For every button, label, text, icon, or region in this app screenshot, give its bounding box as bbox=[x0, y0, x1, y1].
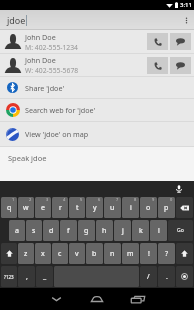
button[interactable]: t bbox=[69, 197, 85, 218]
staticText: . bbox=[166, 272, 168, 282]
staticText: p bbox=[164, 203, 169, 213]
staticText: Go bbox=[177, 227, 184, 234]
button[interactable]: Slash bbox=[140, 266, 157, 287]
button[interactable]: Recents bbox=[128, 288, 148, 310]
button[interactable]: View 'jdoe' on map bbox=[0, 122, 194, 146]
button[interactable]: v bbox=[69, 243, 85, 264]
button[interactable]: z bbox=[18, 243, 34, 264]
staticText: q bbox=[7, 203, 12, 213]
button[interactable]: p bbox=[158, 197, 175, 218]
staticText: v bbox=[75, 249, 79, 259]
staticText: M: 402-555-1234 bbox=[25, 43, 79, 52]
button[interactable]: Back bbox=[46, 288, 66, 310]
button[interactable]: j bbox=[114, 220, 131, 241]
button[interactable]: u bbox=[104, 197, 121, 218]
button[interactable]: John Doe bbox=[0, 30, 194, 53]
button[interactable]: x bbox=[35, 243, 51, 264]
button[interactable]: Emoji bbox=[176, 266, 193, 287]
staticText: r bbox=[59, 203, 62, 213]
staticText: u bbox=[110, 203, 115, 213]
button[interactable]: More options bbox=[178, 10, 194, 30]
button[interactable]: ! bbox=[140, 243, 157, 264]
staticText: _ bbox=[43, 272, 47, 282]
button[interactable]: k bbox=[132, 220, 149, 241]
button[interactable]: w bbox=[18, 197, 34, 218]
button[interactable]: Backspace bbox=[176, 197, 193, 218]
button[interactable]: a bbox=[9, 220, 25, 241]
staticText: c bbox=[58, 249, 62, 259]
staticText: Speak jdoe bbox=[8, 153, 47, 163]
button[interactable]: h bbox=[96, 220, 113, 241]
button[interactable]: Period bbox=[158, 266, 175, 287]
button[interactable]: Voice input bbox=[174, 184, 183, 193]
staticText: 3 bbox=[46, 197, 49, 202]
button[interactable]: d bbox=[43, 220, 59, 241]
staticText: View 'jdoe' on map bbox=[25, 129, 89, 139]
button[interactable]: s bbox=[26, 220, 42, 241]
staticText: John Doe bbox=[25, 32, 56, 42]
button[interactable]: Call bbox=[147, 33, 168, 50]
button[interactable]: o bbox=[140, 197, 157, 218]
staticText: ?123 bbox=[4, 274, 14, 280]
staticText: l bbox=[158, 226, 160, 236]
staticText: 1 bbox=[12, 197, 15, 202]
button[interactable]: Shift bbox=[176, 243, 193, 264]
staticText: j bbox=[122, 226, 124, 236]
staticText: , bbox=[26, 272, 28, 282]
staticText: f bbox=[67, 226, 70, 236]
button[interactable]: ? bbox=[158, 243, 175, 264]
button[interactable]: Comma bbox=[18, 266, 35, 287]
staticText: x bbox=[41, 249, 45, 259]
staticText: a bbox=[15, 226, 19, 236]
button[interactable]: y bbox=[86, 197, 103, 218]
staticText: 8 bbox=[134, 197, 137, 202]
staticText: e bbox=[41, 203, 45, 213]
staticText: w bbox=[23, 203, 29, 213]
staticText: k bbox=[139, 226, 143, 236]
button[interactable]: l bbox=[150, 220, 167, 241]
button[interactable]: b bbox=[86, 243, 103, 264]
staticText: 6 bbox=[98, 197, 101, 202]
button[interactable]: Search web for 'jdoe' bbox=[0, 99, 194, 121]
staticText: W: 402-555-5678 bbox=[25, 66, 79, 75]
button[interactable]: Call bbox=[147, 57, 168, 74]
button[interactable]: f bbox=[60, 220, 77, 241]
staticText: John Doe bbox=[25, 55, 56, 65]
staticText: z bbox=[24, 249, 28, 259]
staticText: b bbox=[92, 249, 97, 259]
button[interactable]: Speak jdoe bbox=[0, 147, 194, 169]
button[interactable]: i bbox=[122, 197, 139, 218]
staticText: o bbox=[146, 203, 151, 213]
staticText: t bbox=[76, 203, 79, 213]
button[interactable]: e bbox=[35, 197, 51, 218]
button[interactable]: Go bbox=[168, 220, 193, 241]
button[interactable]: n bbox=[104, 243, 121, 264]
button[interactable]: r bbox=[52, 197, 68, 218]
button[interactable]: Message bbox=[170, 33, 191, 50]
button[interactable]: Message bbox=[170, 57, 191, 74]
button[interactable]: q bbox=[1, 197, 17, 218]
button[interactable]: Symbols bbox=[1, 266, 17, 287]
button[interactable]: g bbox=[78, 220, 95, 241]
button[interactable]: Shift bbox=[1, 243, 17, 264]
button[interactable]: Underscore bbox=[36, 266, 53, 287]
staticText: 7 bbox=[116, 197, 119, 202]
staticText: d bbox=[49, 226, 54, 236]
staticText: 4 bbox=[63, 197, 66, 202]
button[interactable]: Home bbox=[87, 288, 107, 310]
staticText: s bbox=[32, 226, 36, 236]
staticText: ! bbox=[148, 249, 150, 259]
staticText: 0 bbox=[170, 197, 173, 202]
staticText: Search web for 'jdoe' bbox=[25, 105, 96, 115]
staticText: y bbox=[93, 203, 97, 213]
button[interactable]: c bbox=[52, 243, 68, 264]
staticText: m bbox=[127, 249, 134, 259]
staticText: g bbox=[84, 226, 89, 236]
staticText: n bbox=[110, 249, 115, 259]
staticText: 5 bbox=[80, 197, 83, 202]
button[interactable]: m bbox=[122, 243, 139, 264]
button[interactable]: John Doe bbox=[0, 54, 194, 76]
staticText: h bbox=[102, 226, 107, 236]
button[interactable]: Share 'jdoe' bbox=[0, 77, 194, 98]
